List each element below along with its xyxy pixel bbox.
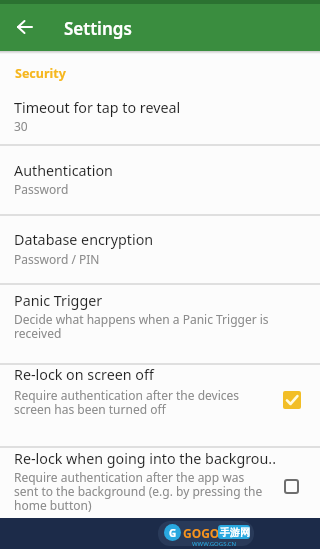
staticText: Security [15,65,66,82]
staticText: 30 [14,118,28,134]
staticText: G [169,526,177,540]
button[interactable]: Panic Trigger [0,285,320,363]
staticText: Re-lock on screen off [14,365,154,384]
button[interactable]: Re-lock on screen off [0,365,320,446]
button[interactable]: Re-lock when going into the backgrou.. [0,448,320,518]
staticText: Timeout for tap to reveal [14,98,181,117]
staticText: home button) [14,497,92,513]
button[interactable]: Authentication [0,146,320,214]
button[interactable]: Timeout for tap to reveal [0,88,320,145]
staticText: Authentication [14,161,113,180]
staticText: Re-lock when going into the backgrou.. [14,449,276,468]
staticText: received [14,325,62,341]
button[interactable] [11,13,39,41]
staticText: 手游网 [220,526,250,539]
staticText: Require authentication after the app was [14,469,245,485]
staticText: sent to the background (e.g. by pressing… [14,483,263,499]
staticText: Password / PIN [14,251,100,267]
button[interactable]: Database encryption [0,216,320,283]
staticText: Settings [64,17,132,40]
staticText: WWW.GOGS.CN [192,540,237,548]
staticText: Database encryption [14,230,154,249]
staticText: Password [14,181,69,197]
staticText: Decide what happens when a Panic Trigger… [14,311,269,327]
staticText: Require authentication after the devices [14,387,240,403]
staticText: Panic Trigger [14,291,103,310]
staticText: GOGO [183,525,220,541]
staticText: screen has been turned off [14,401,166,417]
